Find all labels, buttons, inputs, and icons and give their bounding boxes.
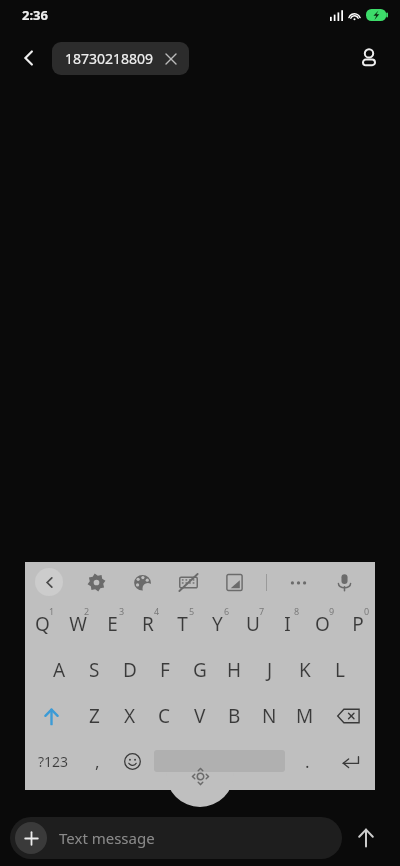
button[interactable]: T xyxy=(165,601,200,647)
staticText: . xyxy=(305,750,310,773)
button[interactable]: K xyxy=(287,647,322,693)
staticText: J xyxy=(267,657,273,683)
button[interactable]: Space xyxy=(150,739,289,783)
staticText: 4 xyxy=(154,605,160,617)
staticText: 6 xyxy=(224,605,230,617)
staticText: X xyxy=(124,703,136,729)
staticText: O xyxy=(315,611,330,637)
button[interactable]: B xyxy=(217,693,252,739)
staticText: 18730218809 xyxy=(65,49,154,68)
staticText: Text message xyxy=(59,828,155,848)
button[interactable]: A xyxy=(42,647,77,693)
button[interactable]: Resize keyboard xyxy=(211,563,257,601)
staticText: R xyxy=(142,611,154,637)
staticText: 8 xyxy=(294,605,300,617)
staticText: 9 xyxy=(329,605,335,617)
staticText: D xyxy=(123,657,137,683)
staticText: G xyxy=(193,657,207,683)
button[interactable]: Backspace xyxy=(322,693,375,739)
button[interactable]: Add attachment xyxy=(10,817,342,859)
staticText: M xyxy=(296,703,314,729)
staticText: B xyxy=(228,703,241,729)
staticText: N xyxy=(262,703,277,729)
button[interactable]: Settings xyxy=(73,563,119,601)
button[interactable]: Hide keyboard xyxy=(165,563,211,601)
button[interactable]: V xyxy=(182,693,217,739)
staticText: H xyxy=(227,657,242,683)
button[interactable]: W xyxy=(60,601,95,647)
button[interactable]: 18730218809 xyxy=(52,42,189,75)
staticText: E xyxy=(107,611,118,637)
staticText: 3 xyxy=(119,605,125,617)
button[interactable]: . xyxy=(289,739,325,783)
button[interactable]: Back xyxy=(10,39,48,77)
button[interactable]: H xyxy=(217,647,252,693)
staticText: W xyxy=(69,611,87,637)
button[interactable]: Voice input xyxy=(321,563,367,601)
staticText: ?123 xyxy=(38,752,69,771)
button[interactable]: L xyxy=(322,647,357,693)
button[interactable]: Add attachment xyxy=(15,822,47,854)
button[interactable]: , xyxy=(81,739,114,783)
button[interactable]: M xyxy=(287,693,322,739)
button[interactable]: X xyxy=(112,693,147,739)
button[interactable]: G xyxy=(182,647,217,693)
staticText: A xyxy=(53,657,66,683)
staticText: S xyxy=(89,657,100,683)
staticText: C xyxy=(158,703,171,729)
button[interactable]: Shift xyxy=(25,693,77,739)
staticText: Z xyxy=(89,703,100,729)
button[interactable]: Theme xyxy=(119,563,165,601)
staticText: , xyxy=(95,750,100,773)
staticText: 1 xyxy=(49,605,55,617)
button[interactable]: Collapse keyboard xyxy=(25,563,73,601)
staticText: 2 xyxy=(84,605,90,617)
button[interactable]: J xyxy=(252,647,287,693)
button[interactable]: P xyxy=(340,601,375,647)
staticText: T xyxy=(177,611,188,637)
button[interactable]: O xyxy=(305,601,340,647)
button[interactable]: C xyxy=(147,693,182,739)
staticText: L xyxy=(335,657,345,683)
button[interactable]: D xyxy=(112,647,147,693)
staticText: U xyxy=(246,611,260,637)
button[interactable]: F xyxy=(147,647,182,693)
button[interactable]: Send xyxy=(342,814,390,862)
staticText: K xyxy=(299,657,311,683)
button[interactable]: U xyxy=(235,601,270,647)
staticText: 2:36 xyxy=(22,6,48,24)
button[interactable]: N xyxy=(252,693,287,739)
button[interactable]: I xyxy=(270,601,305,647)
button[interactable]: Cursor control xyxy=(166,762,234,812)
staticText: I xyxy=(284,611,291,637)
button[interactable]: Enter xyxy=(325,739,375,783)
staticText: 5 xyxy=(189,605,195,617)
button[interactable]: R xyxy=(130,601,165,647)
staticText: Y xyxy=(212,611,223,637)
button[interactable]: E xyxy=(95,601,130,647)
staticText: V xyxy=(194,703,206,729)
button[interactable]: Z xyxy=(77,693,112,739)
button[interactable]: S xyxy=(77,647,112,693)
button[interactable]: Q xyxy=(25,601,60,647)
button[interactable]: Y xyxy=(200,601,235,647)
button[interactable]: More options xyxy=(275,563,321,601)
staticText: 7 xyxy=(259,605,265,617)
button[interactable]: Emoji xyxy=(114,739,150,783)
staticText: 0 xyxy=(364,605,370,617)
button[interactable]: ?123 xyxy=(25,739,81,783)
staticText: Q xyxy=(35,611,50,637)
button[interactable]: Contact profile xyxy=(350,39,388,77)
staticText: F xyxy=(160,657,170,683)
staticText: P xyxy=(352,611,364,637)
